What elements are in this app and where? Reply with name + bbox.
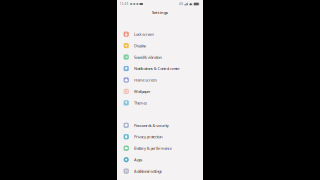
staticText: Home screen xyxy=(134,77,156,83)
staticText: Settings xyxy=(152,10,168,15)
staticText: Themes xyxy=(134,100,147,105)
button[interactable]: Wallpaper xyxy=(117,86,203,97)
button[interactable]: Privacy protection xyxy=(117,131,203,142)
staticText: 12:45 xyxy=(120,2,129,6)
staticText: Privacy protection xyxy=(134,134,162,139)
staticText: Wallpaper xyxy=(134,89,151,94)
button[interactable]: Battery & performance xyxy=(117,142,203,154)
staticText: Lock screen xyxy=(134,31,153,37)
button[interactable]: Apps xyxy=(117,154,203,165)
staticText: Additional settings xyxy=(134,168,162,174)
button[interactable]: Sound & vibration xyxy=(117,51,203,63)
button[interactable]: Lock screen xyxy=(117,28,203,40)
button[interactable]: Additional settings xyxy=(117,165,203,177)
staticText: Display xyxy=(134,43,146,48)
button[interactable]: Passwords & security xyxy=(117,120,203,131)
staticText: Battery & performance xyxy=(134,146,172,151)
button[interactable]: Notifications & Control center xyxy=(117,63,203,74)
staticText: Notifications & Control center xyxy=(134,66,180,71)
button[interactable]: Display xyxy=(117,40,203,51)
staticText: 4G xyxy=(179,2,183,6)
button[interactable]: Themes xyxy=(117,97,203,109)
staticText: Sound & vibration xyxy=(134,54,161,60)
staticText: Passwords & security xyxy=(134,123,169,128)
staticText: Apps xyxy=(134,157,143,162)
button[interactable]: Home screen xyxy=(117,74,203,86)
